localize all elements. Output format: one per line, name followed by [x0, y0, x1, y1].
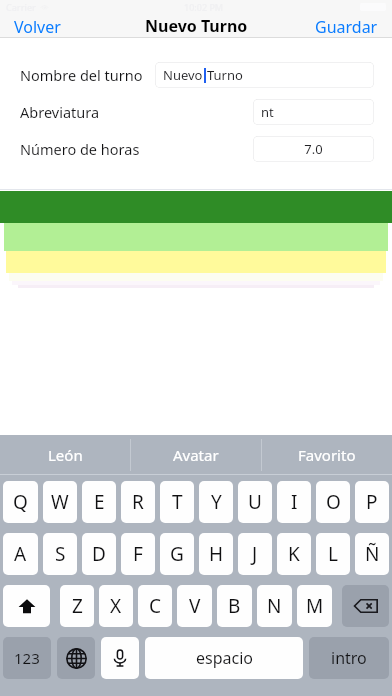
staticText: León: [48, 445, 83, 465]
staticText: Z: [72, 593, 83, 619]
button[interactable]: intro: [309, 637, 389, 679]
button[interactable]: Shift: [3, 585, 50, 627]
staticText: S: [55, 541, 66, 567]
button[interactable]: Nuevo: [155, 62, 374, 88]
staticText: Ñ: [365, 541, 380, 567]
staticText: U: [248, 489, 262, 515]
staticText: Turno: [207, 66, 243, 84]
staticText: Favorito: [298, 445, 356, 465]
staticText: J: [252, 541, 258, 567]
staticText: Y: [211, 489, 222, 515]
button[interactable]: C: [138, 585, 172, 627]
staticText: Avatar: [173, 445, 219, 465]
button[interactable]: Favorito: [262, 435, 392, 475]
staticText: R: [132, 489, 144, 515]
button[interactable]: nt: [253, 99, 374, 125]
button[interactable]: V: [177, 585, 212, 627]
staticText: Nuevo: [163, 66, 203, 84]
button[interactable]: R: [121, 481, 155, 523]
staticText: Nombre del turno: [20, 65, 143, 85]
staticText: 123: [14, 648, 40, 668]
staticText: C: [149, 593, 162, 619]
staticText: B: [228, 593, 241, 619]
button[interactable]: Q: [3, 481, 38, 523]
staticText: T: [172, 489, 183, 515]
staticText: Abreviatura: [20, 102, 100, 122]
button[interactable]: N: [257, 585, 292, 627]
button[interactable]: H: [199, 533, 233, 575]
staticText: G: [170, 541, 184, 567]
button[interactable]: Z: [60, 585, 94, 627]
button[interactable]: Dictado: [101, 637, 139, 679]
staticText: Nuevo Turno: [145, 15, 248, 37]
button[interactable]: Y: [199, 481, 233, 523]
staticText: E: [94, 489, 105, 515]
staticText: M: [306, 593, 324, 619]
button[interactable]: espacio: [145, 637, 303, 679]
button[interactable]: D: [82, 533, 116, 575]
button[interactable]: León: [0, 435, 130, 475]
staticText: W: [51, 489, 69, 515]
staticText: K: [288, 541, 300, 567]
button[interactable]: B: [217, 585, 252, 627]
staticText: X: [110, 593, 122, 619]
button[interactable]: O: [316, 481, 350, 523]
button[interactable]: 123: [3, 637, 51, 679]
button[interactable]: W: [43, 481, 77, 523]
button[interactable]: L: [316, 533, 350, 575]
button[interactable]: Guardar: [301, 14, 392, 38]
button[interactable]: E: [82, 481, 116, 523]
staticText: I: [291, 489, 298, 515]
staticText: H: [209, 541, 224, 567]
button[interactable]: S: [43, 533, 77, 575]
button[interactable]: G: [160, 533, 194, 575]
button[interactable]: J: [238, 533, 272, 575]
staticText: F: [133, 541, 143, 567]
button[interactable]: I: [277, 481, 311, 523]
button[interactable]: Avatar: [131, 435, 261, 475]
button[interactable]: K: [277, 533, 311, 575]
button[interactable]: X: [99, 585, 133, 627]
button[interactable]: P: [355, 481, 389, 523]
staticText: 7.0: [304, 140, 323, 158]
staticText: O: [326, 489, 341, 515]
button[interactable]: U: [238, 481, 272, 523]
staticText: D: [92, 541, 106, 567]
button[interactable]: 7.0: [253, 136, 374, 162]
staticText: Volver: [14, 16, 61, 36]
button[interactable]: Volver: [0, 14, 75, 38]
button[interactable]: A: [3, 533, 38, 575]
staticText: L: [328, 541, 338, 567]
staticText: Guardar: [315, 16, 378, 36]
button[interactable]: T: [160, 481, 194, 523]
staticText: Q: [13, 489, 28, 515]
staticText: nt: [261, 103, 274, 121]
staticText: espacio: [196, 647, 253, 669]
staticText: N: [267, 593, 282, 619]
staticText: P: [366, 489, 378, 515]
staticText: intro: [331, 647, 367, 669]
button[interactable]: F: [121, 533, 155, 575]
button[interactable]: Ñ: [355, 533, 389, 575]
staticText: V: [189, 593, 201, 619]
button[interactable]: Cambiar idioma: [57, 637, 95, 679]
staticText: A: [14, 541, 27, 567]
button[interactable]: M: [297, 585, 332, 627]
staticText: Número de horas: [20, 139, 140, 159]
button[interactable]: Backspace: [342, 585, 389, 627]
